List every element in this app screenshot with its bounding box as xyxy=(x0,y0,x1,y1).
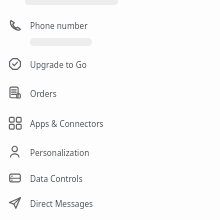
button[interactable]: Personalization xyxy=(0,139,220,165)
staticText: Data Controls xyxy=(30,173,83,184)
staticText: Apps & Connectors xyxy=(30,118,104,129)
button[interactable]: Apps & Connectors xyxy=(0,110,220,136)
button[interactable]: Orders xyxy=(0,80,220,106)
staticText: Phone number xyxy=(30,20,88,31)
button[interactable]: Direct Messages xyxy=(0,190,220,216)
button[interactable]: Phone number xyxy=(0,12,220,38)
button[interactable]: Upgrade to Go xyxy=(0,51,220,77)
staticText: Orders xyxy=(30,88,57,99)
staticText: Upgrade to Go xyxy=(30,59,87,70)
button[interactable]: Data Controls xyxy=(0,165,220,191)
staticText: Personalization xyxy=(30,147,90,158)
staticText: Direct Messages xyxy=(30,198,93,209)
